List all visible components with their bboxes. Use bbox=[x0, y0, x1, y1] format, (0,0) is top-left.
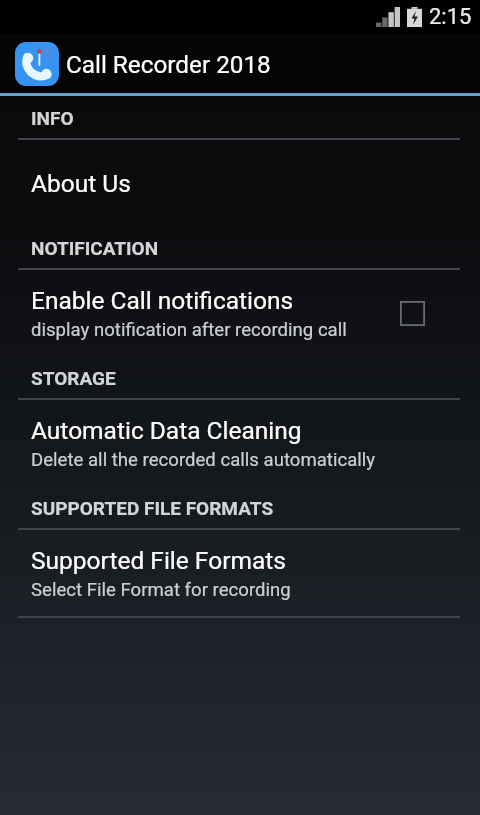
staticText: STORAGE bbox=[31, 367, 116, 389]
staticText: NOTIFICATION bbox=[31, 237, 159, 259]
button[interactable]: Supported File Formats bbox=[0, 530, 480, 616]
button[interactable]: About Us bbox=[0, 140, 480, 226]
staticText: Delete all the recorded calls automatica… bbox=[31, 449, 376, 471]
staticText: About Us bbox=[31, 169, 131, 198]
button[interactable]: Automatic Data Cleaning bbox=[0, 400, 480, 486]
staticText: 2:15 bbox=[429, 4, 472, 30]
staticText: INFO bbox=[31, 107, 74, 129]
staticText: Call Recorder 2018 bbox=[66, 50, 271, 78]
staticText: SUPPORTED FILE FORMATS bbox=[31, 497, 274, 519]
staticText: Automatic Data Cleaning bbox=[31, 416, 302, 445]
staticText: Select File Format for recording bbox=[31, 579, 291, 601]
staticText: Enable Call notifications bbox=[31, 286, 294, 315]
staticText: display notification after recording cal… bbox=[31, 319, 347, 341]
button[interactable]: Enable Call notifications toggle bbox=[389, 290, 435, 336]
button[interactable]: Call Recorder 2018 app icon bbox=[15, 42, 59, 86]
button[interactable]: Enable Call notifications bbox=[0, 270, 480, 356]
button[interactable]: Call Recorder 2018 app icon bbox=[0, 34, 480, 93]
staticText: Supported File Formats bbox=[31, 546, 286, 575]
